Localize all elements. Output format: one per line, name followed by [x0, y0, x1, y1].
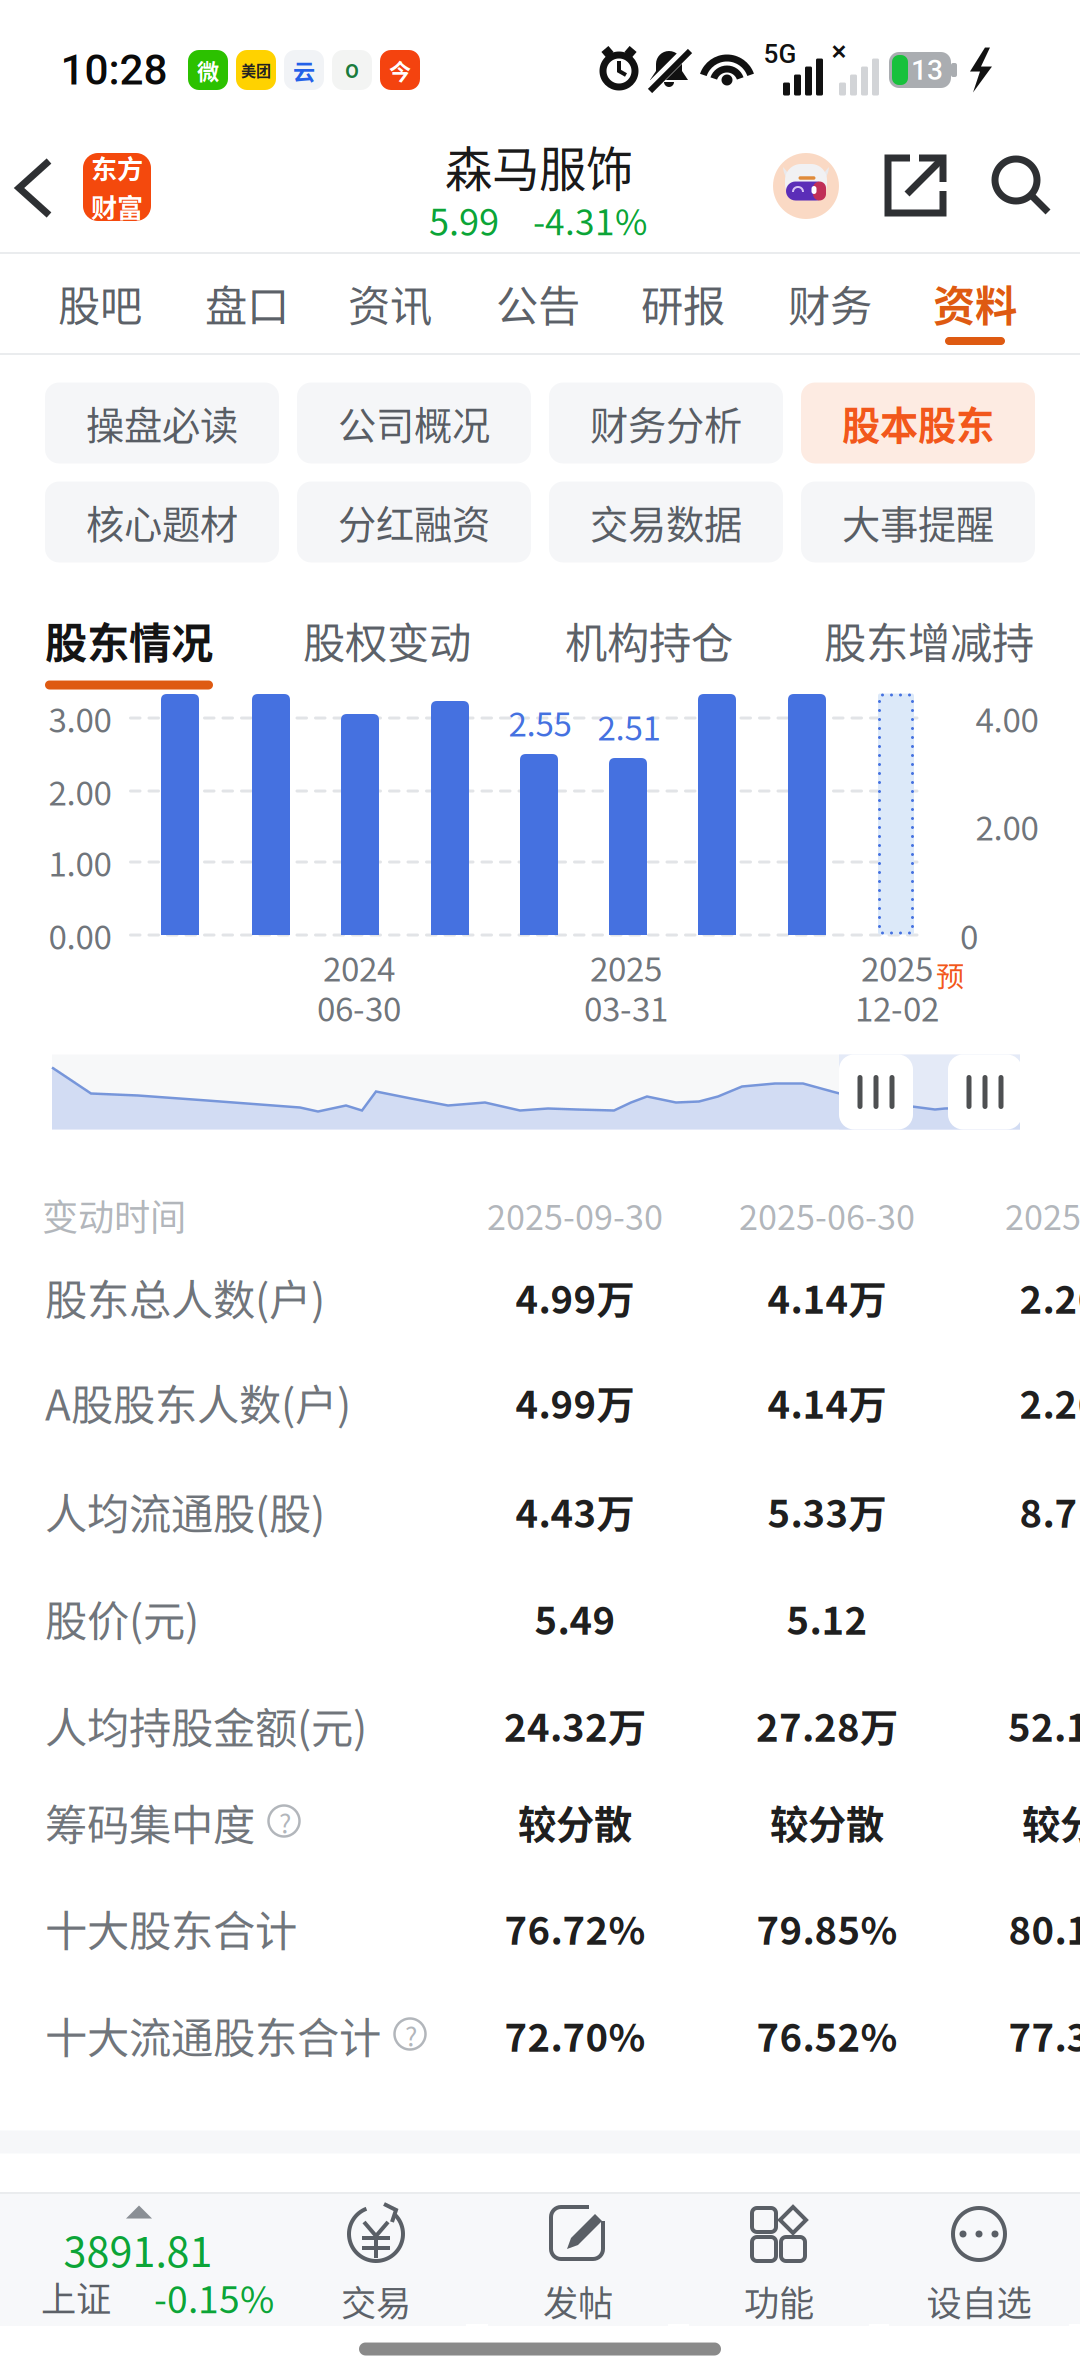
staticText: 2.51: [597, 702, 660, 750]
staticText: 06-30: [317, 983, 401, 1031]
staticText: 5.12: [786, 1590, 867, 1646]
staticText: 人均持股金额(元): [45, 1694, 367, 1756]
staticText: 0: [960, 911, 978, 959]
staticText: 03-31: [584, 983, 668, 1031]
staticText: 4.43万: [515, 1483, 634, 1539]
button[interactable]: 股本股东: [801, 382, 1035, 463]
button[interactable]: Range handle: [839, 1054, 913, 1129]
staticText: 大事提醒: [842, 494, 994, 550]
staticText: 2025-: [1005, 1190, 1080, 1240]
staticText: 人均流通股(股): [45, 1480, 325, 1542]
button[interactable]: AI assistant: [773, 153, 839, 219]
staticText: 发帖: [543, 2275, 613, 2326]
button[interactable]: 研报: [613, 254, 753, 352]
button[interactable]: Search: [991, 155, 1053, 217]
staticText: 上证: [41, 2271, 111, 2322]
staticText: 资讯: [348, 272, 432, 334]
staticText: 微: [197, 54, 219, 86]
button[interactable]: 财务分析: [549, 382, 783, 463]
staticText: 4.00: [975, 694, 1038, 742]
staticText: 52.18万: [1008, 1697, 1080, 1753]
button[interactable]: 大事提醒: [801, 481, 1035, 562]
button[interactable]: 股权变动: [303, 592, 471, 688]
staticText: 2025: [590, 943, 662, 991]
staticText: 公司概况: [338, 395, 490, 451]
staticText: 财: [91, 187, 117, 225]
staticText: 资料: [933, 272, 1017, 334]
staticText: ×: [831, 34, 846, 67]
staticText: 5G: [763, 39, 796, 69]
button[interactable]: 公司概况: [297, 382, 531, 463]
staticText: 功能: [744, 2275, 814, 2326]
button[interactable]: 公告: [468, 254, 608, 352]
staticText: 十大股东合计: [45, 1897, 297, 1959]
staticText: 财务分析: [590, 395, 742, 451]
button[interactable]: 核心题材: [45, 481, 279, 562]
staticText: 5.33万: [767, 1483, 886, 1539]
staticText: 股价(元): [45, 1587, 199, 1649]
button[interactable]: 股吧: [30, 254, 170, 352]
staticText: 0.00: [48, 911, 111, 959]
button[interactable]: 股东情况: [45, 592, 213, 688]
staticText: 4.14万: [767, 1269, 886, 1325]
staticText: 27.28万: [756, 1697, 898, 1753]
staticText: 4.14万: [767, 1374, 886, 1430]
button[interactable]: 盘口: [177, 254, 317, 352]
staticText: 美团: [241, 59, 271, 81]
button[interactable]: 交易: [286, 2196, 466, 2326]
button[interactable]: 资讯: [320, 254, 460, 352]
staticText: 2.26万: [1019, 1374, 1080, 1430]
staticText: 4.99万: [515, 1269, 634, 1325]
button[interactable]: Shanghai Composite index: [0, 2196, 300, 2326]
staticText: 机构持仓: [565, 609, 733, 671]
staticText: 5.49: [534, 1590, 615, 1646]
staticText: 76.72%: [504, 1900, 645, 1956]
staticText: 76.52%: [756, 2007, 897, 2063]
button[interactable]: 股东增减持: [824, 592, 1034, 688]
staticText: A股股东人数(户): [45, 1371, 351, 1433]
button[interactable]: Range handle: [948, 1054, 1022, 1129]
button[interactable]: 发帖: [488, 2196, 668, 2326]
button[interactable]: 分红融资: [297, 481, 531, 562]
button[interactable]: 操盘必读: [45, 382, 279, 463]
staticText: 较分散: [770, 1794, 884, 1850]
button[interactable]: 交易数据: [549, 481, 783, 562]
staticText: 72.70%: [504, 2007, 645, 2063]
button[interactable]: Back: [0, 102, 86, 274]
staticText: 80.16%: [1008, 1900, 1080, 1956]
staticText: O: [345, 57, 359, 83]
staticText: 1.00: [48, 838, 111, 886]
button[interactable]: East Money: [83, 153, 151, 221]
staticText: 云: [293, 54, 315, 86]
staticText: ?: [279, 1803, 291, 1841]
staticText: 森马服饰: [445, 132, 633, 200]
button[interactable]: 财务: [760, 254, 900, 352]
staticText: -4.31%: [533, 194, 647, 245]
staticText: 筹码集中度: [45, 1791, 255, 1853]
staticText: 十大流通股东合计: [45, 2004, 381, 2066]
button[interactable]: 机构持仓: [565, 592, 733, 688]
staticText: 2024: [323, 943, 395, 991]
staticText: 设自选: [926, 2275, 1031, 2326]
button[interactable]: 设自选: [889, 2196, 1069, 2326]
staticText: 盘口: [205, 272, 289, 334]
staticText: 2.26万: [1019, 1269, 1080, 1325]
staticText: 变动时间: [42, 1189, 186, 1241]
staticText: 股本股东: [842, 395, 994, 451]
button[interactable]: 资料: [905, 254, 1045, 352]
staticText: 今: [389, 54, 411, 86]
staticText: 研报: [641, 272, 725, 334]
button[interactable]: Share: [884, 154, 948, 218]
staticText: 较分散: [1022, 1794, 1080, 1850]
staticText: 2.00: [975, 802, 1038, 850]
staticText: 富: [117, 187, 143, 225]
button[interactable]: 功能: [689, 2196, 869, 2326]
staticText: 股东总人数(户): [45, 1266, 325, 1328]
staticText: 3891.81: [63, 2219, 212, 2279]
staticText: 东: [91, 149, 117, 186]
staticText: 股东增减持: [824, 609, 1034, 671]
staticText: 12-02: [855, 983, 939, 1031]
staticText: 77.31%: [1008, 2007, 1080, 2063]
staticText: 交易: [341, 2275, 411, 2326]
staticText: 10:28: [60, 45, 167, 95]
